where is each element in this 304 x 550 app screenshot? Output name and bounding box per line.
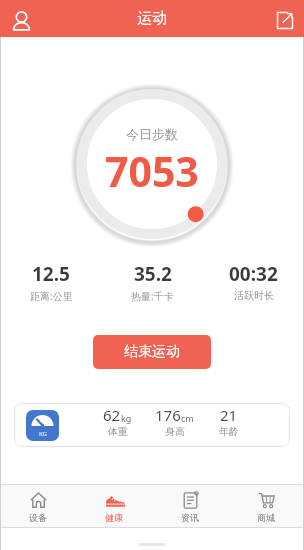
staticText: 7053 — [105, 143, 199, 199]
staticText: 商城 — [257, 512, 275, 523]
staticText: kg — [121, 412, 132, 424]
staticText: 00:32 — [229, 261, 278, 287]
staticText: 热量:千卡 — [131, 289, 174, 303]
staticText: 健康 — [105, 512, 123, 523]
staticText: cm — [181, 412, 194, 424]
staticText: 12.5 — [32, 261, 70, 287]
staticText: 年龄 — [219, 425, 239, 438]
staticText: 运动 — [137, 9, 167, 28]
staticText: 资讯 — [181, 512, 199, 523]
button[interactable]: 商城 — [228, 485, 304, 527]
staticText: 21 — [220, 405, 238, 425]
staticText: 176 — [155, 405, 181, 425]
button[interactable]: KG — [14, 403, 290, 447]
button[interactable] — [275, 11, 294, 30]
staticText: 结束运动 — [124, 343, 180, 361]
staticText: 设备 — [29, 512, 47, 523]
staticText: 活跃时长 — [234, 289, 274, 302]
staticText: 体重 — [108, 425, 128, 438]
button[interactable] — [11, 10, 33, 32]
button[interactable]: 设备 — [0, 485, 76, 527]
button[interactable]: 结束运动 — [93, 335, 211, 369]
staticText: KG — [39, 430, 47, 438]
staticText: 62 — [103, 405, 121, 425]
staticText: 35.2 — [134, 261, 172, 287]
staticText: 今日步数 — [126, 126, 178, 142]
staticText: 身高 — [165, 425, 185, 438]
staticText: 距离:公里 — [30, 289, 73, 303]
button[interactable]: 资讯 — [152, 485, 228, 527]
button[interactable]: 健康 — [76, 485, 152, 527]
